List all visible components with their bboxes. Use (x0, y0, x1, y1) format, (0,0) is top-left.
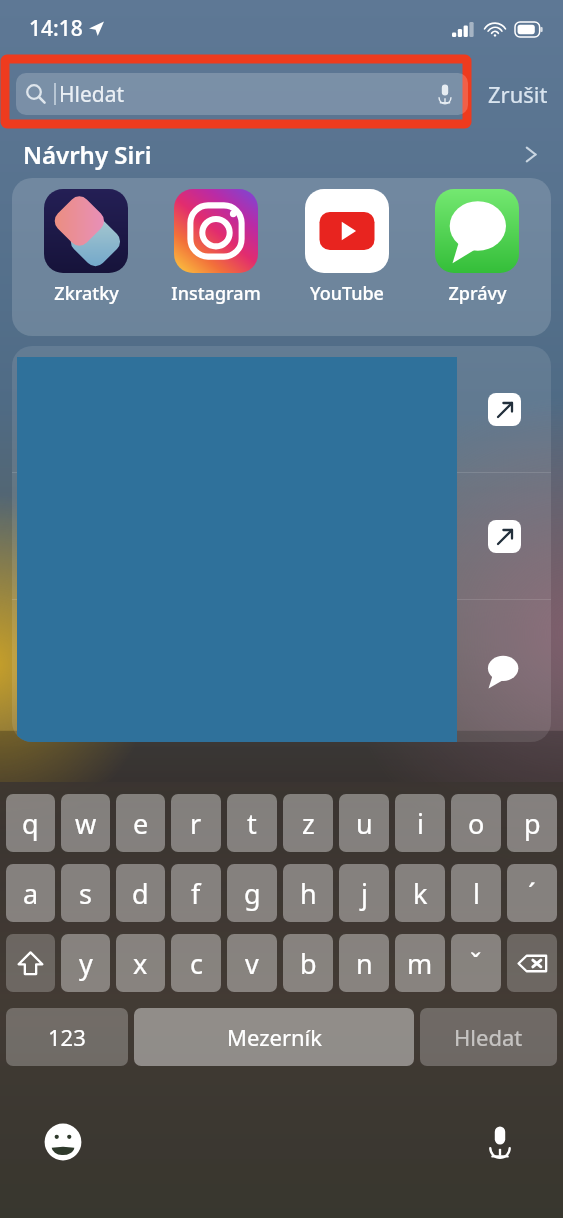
button[interactable]: q (6, 794, 55, 852)
staticText: n (356, 945, 373, 982)
staticText: Hledat (59, 80, 125, 109)
staticText: x (133, 945, 148, 982)
staticText: i (417, 805, 424, 842)
button[interactable]: r (171, 794, 221, 852)
staticText: Mezerník (227, 1022, 322, 1052)
button[interactable]: Dictation (478, 1120, 522, 1164)
button[interactable]: x (116, 934, 165, 992)
staticText: c (190, 945, 203, 982)
button[interactable]: Open link (488, 520, 521, 553)
button[interactable]: Návrhy Siri (0, 130, 563, 178)
button[interactable]: Voice search (432, 81, 458, 107)
staticText: o (468, 805, 485, 842)
staticText: q (22, 805, 39, 842)
button[interactable]: k (395, 864, 445, 922)
staticText: k (413, 875, 428, 912)
staticText: s (79, 875, 92, 912)
button[interactable]: ˇ (451, 934, 501, 992)
button[interactable]: l (451, 864, 501, 922)
button[interactable]: n (339, 934, 389, 992)
button[interactable]: p (507, 794, 557, 852)
button[interactable]: v (227, 934, 277, 992)
button[interactable]: Shift (6, 934, 55, 992)
button[interactable]: e (116, 794, 165, 852)
staticText: u (356, 805, 373, 842)
button[interactable]: Zkratky (26, 189, 146, 306)
button[interactable]: Message (483, 652, 521, 690)
staticText: Návrhy Siri (23, 138, 152, 171)
button[interactable]: s (61, 864, 110, 922)
button[interactable]: i (395, 794, 445, 852)
staticText: 14:18 (29, 14, 83, 43)
staticText: j (361, 875, 368, 912)
button[interactable]: w (61, 794, 110, 852)
staticText: v (245, 945, 259, 982)
staticText: Zprávy (448, 281, 507, 306)
staticText: YouTube (310, 281, 384, 306)
staticText: Zrušit (488, 79, 548, 109)
button[interactable]: a (6, 864, 55, 922)
button[interactable]: f (171, 864, 221, 922)
staticText: e (133, 805, 149, 842)
button[interactable]: j (339, 864, 389, 922)
button[interactable]: g (227, 864, 277, 922)
staticText: z (302, 805, 315, 842)
staticText: ˇ (470, 945, 482, 982)
button[interactable]: Emoji keyboard (41, 1120, 85, 1164)
staticText: Hledat (454, 1022, 523, 1052)
button[interactable]: Search result (12, 473, 551, 599)
button[interactable]: Hledat (16, 73, 468, 115)
staticText: a (23, 875, 39, 912)
button[interactable]: b (283, 934, 333, 992)
button[interactable]: YouTube (287, 189, 407, 306)
button[interactable]: h (283, 864, 333, 922)
staticText: y (79, 945, 93, 982)
button[interactable]: c (171, 934, 221, 992)
button[interactable]: o (451, 794, 501, 852)
staticText: f (191, 875, 201, 912)
button[interactable]: Zprávy (417, 189, 537, 306)
button[interactable]: ´ (507, 864, 557, 922)
staticText: m (407, 945, 433, 982)
button[interactable]: d (116, 864, 165, 922)
button[interactable]: y (61, 934, 110, 992)
button[interactable]: z (283, 794, 333, 852)
button[interactable]: Zrušit (485, 73, 551, 115)
staticText: Instagram (171, 281, 261, 306)
button[interactable]: Backspace (507, 934, 557, 992)
button[interactable]: Mezerník (134, 1008, 414, 1066)
button[interactable]: Search result (12, 600, 551, 742)
staticText: Zkratky (54, 281, 119, 306)
staticText: t (247, 805, 257, 842)
button[interactable]: t (227, 794, 277, 852)
staticText: b (300, 945, 317, 982)
staticText: 123 (48, 1022, 86, 1052)
button[interactable]: Hledat (420, 1008, 557, 1066)
button[interactable]: Instagram (156, 189, 276, 306)
button[interactable]: m (395, 934, 445, 992)
button[interactable]: u (339, 794, 389, 852)
button[interactable]: 123 (6, 1008, 128, 1066)
staticText: p (524, 805, 541, 842)
staticText: d (132, 875, 149, 912)
staticText: ´ (528, 875, 536, 912)
staticText: h (300, 875, 317, 912)
staticText: l (473, 875, 480, 912)
staticText: r (190, 805, 202, 842)
button[interactable]: Open link (488, 393, 521, 426)
staticText: w (75, 805, 97, 842)
staticText: g (244, 875, 261, 912)
button[interactable]: Search result (12, 346, 551, 472)
